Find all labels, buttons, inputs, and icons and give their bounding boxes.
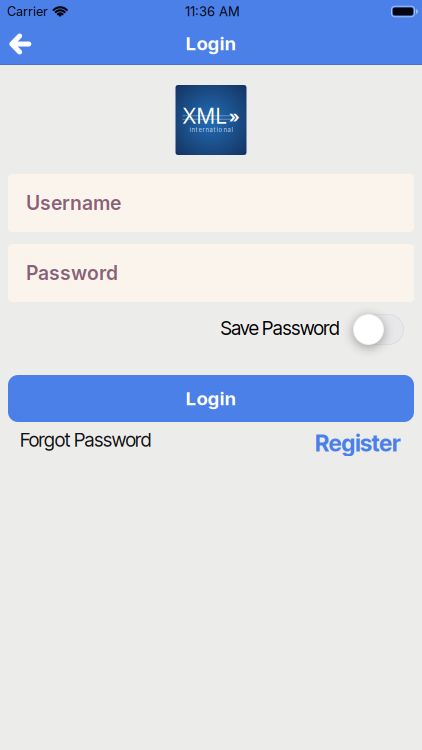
- staticText: »: [229, 107, 240, 127]
- staticText: Register: [315, 429, 401, 457]
- staticText: Username: [26, 191, 121, 215]
- button[interactable]: Save Password: [353, 314, 404, 345]
- staticText: Forgot Password: [20, 428, 152, 451]
- button[interactable]: Register: [315, 429, 401, 457]
- staticText: Password: [26, 261, 118, 285]
- button[interactable]: Login: [8, 375, 414, 422]
- staticText: Carrier: [7, 4, 48, 19]
- staticText: Login: [185, 32, 236, 55]
- staticText: 11:36 AM: [185, 4, 240, 19]
- staticText: Login: [185, 387, 236, 410]
- button[interactable]: Forgot Password: [20, 428, 152, 451]
- button[interactable]: Back: [0, 32, 31, 54]
- staticText: i n t e r n a t i o n a l: [189, 126, 232, 133]
- staticText: Save Password: [221, 316, 340, 339]
- staticText: XML: [182, 103, 227, 129]
